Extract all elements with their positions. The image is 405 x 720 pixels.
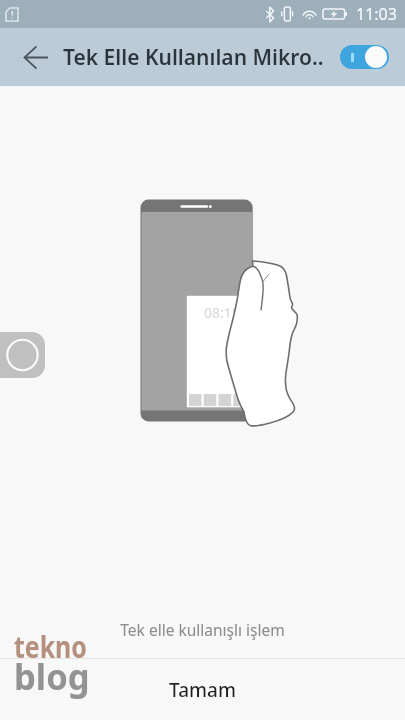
staticText: tekno [14, 626, 87, 667]
button[interactable]: Toggle one handed mode [340, 45, 389, 69]
button[interactable]: Back [14, 35, 58, 79]
staticText: blog [14, 652, 90, 701]
staticText: Tek Elle Kullanılan Mikro.. [63, 43, 340, 72]
staticText: 08:15 [204, 303, 240, 322]
staticText: Tamam [169, 677, 236, 703]
staticText: Tek elle kullanışlı işlem [120, 619, 285, 640]
button[interactable]: Tamam [0, 659, 405, 720]
staticText: 11:03 [356, 3, 397, 25]
button[interactable]: Assistive touch [0, 332, 45, 378]
